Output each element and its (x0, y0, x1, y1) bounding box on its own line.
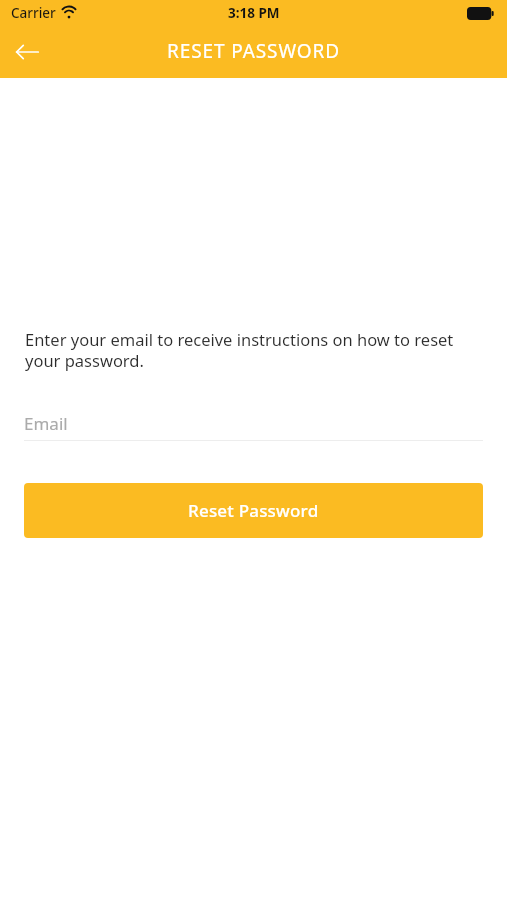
button[interactable]: Reset Password (24, 483, 483, 538)
staticText: Email (24, 412, 68, 435)
staticText: Carrier (11, 4, 56, 22)
button[interactable]: Back (0, 26, 54, 78)
staticText: 3:18 PM (228, 4, 280, 22)
staticText: RESET PASSWORD (167, 38, 341, 64)
button[interactable]: Email (24, 409, 483, 441)
staticText: Enter your email to receive instructions… (25, 328, 463, 372)
staticText: Reset Password (188, 499, 319, 522)
other: Battery full (467, 7, 494, 20)
